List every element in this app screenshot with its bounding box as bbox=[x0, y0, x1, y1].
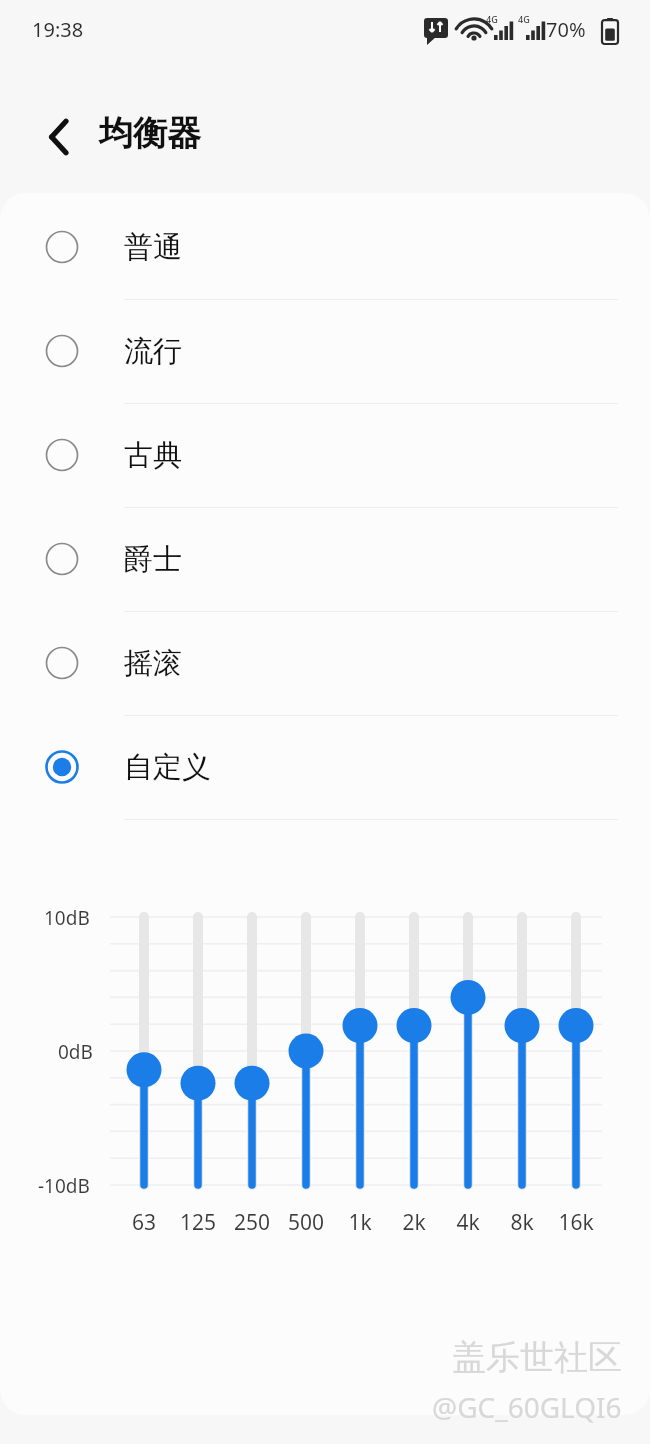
staticText: 盖乐世社区 bbox=[452, 1336, 622, 1379]
staticText: 4G bbox=[486, 13, 498, 25]
staticText: 63 bbox=[117, 1208, 171, 1237]
staticText: 摇滚 bbox=[124, 645, 182, 682]
staticText: 普通 bbox=[124, 229, 182, 266]
button[interactable]: 古典 bbox=[0, 403, 650, 507]
staticText: 古典 bbox=[124, 437, 182, 474]
staticText: 4G bbox=[518, 13, 530, 25]
staticText: 2k bbox=[387, 1208, 441, 1237]
staticText: 250 bbox=[225, 1208, 279, 1237]
staticText: 流行 bbox=[124, 333, 182, 370]
button[interactable]: 自定义 bbox=[0, 715, 650, 819]
staticText: 500 bbox=[279, 1208, 333, 1237]
staticText: 自定义 bbox=[124, 749, 211, 786]
button[interactable]: 普通 bbox=[0, 195, 650, 299]
staticText: 125 bbox=[171, 1208, 225, 1237]
staticText: 70% bbox=[546, 16, 586, 43]
button[interactable]: 爵士 bbox=[0, 507, 650, 611]
staticText: -10dB bbox=[38, 1173, 90, 1199]
staticText: 爵士 bbox=[124, 541, 182, 578]
staticText: 8k bbox=[495, 1208, 549, 1237]
staticText: 1k bbox=[333, 1208, 387, 1237]
staticText: 19:38 bbox=[32, 16, 84, 43]
button[interactable]: 摇滚 bbox=[0, 611, 650, 715]
staticText: 0dB bbox=[58, 1039, 93, 1065]
button[interactable]: Back bbox=[28, 105, 92, 169]
button[interactable]: 流行 bbox=[0, 299, 650, 403]
staticText: 均衡器 bbox=[99, 112, 201, 155]
staticText: @GC_60GLQI6 bbox=[432, 1388, 622, 1426]
staticText: 16k bbox=[549, 1208, 603, 1237]
staticText: 4k bbox=[441, 1208, 495, 1237]
staticText: 10dB bbox=[44, 905, 90, 931]
